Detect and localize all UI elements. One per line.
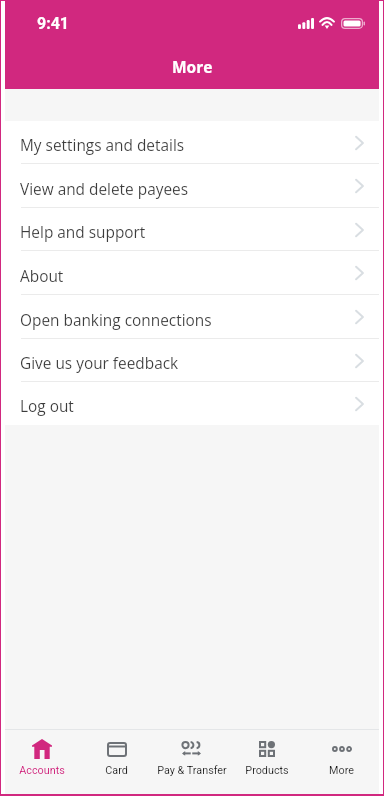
button[interactable]: Give us your feedback: [5, 339, 379, 382]
button[interactable]: More: [304, 730, 379, 794]
staticText: About: [20, 266, 64, 287]
staticText: My settings and details: [20, 135, 185, 156]
staticText: More: [329, 764, 354, 777]
staticText: Accounts: [19, 764, 65, 777]
button[interactable]: Products: [229, 730, 304, 794]
button[interactable]: My settings and details: [5, 121, 379, 164]
button[interactable]: Log out: [5, 382, 379, 425]
button[interactable]: Card: [79, 730, 154, 794]
staticText: Give us your feedback: [20, 353, 179, 374]
staticText: 9:41: [37, 14, 70, 33]
staticText: Open banking connections: [20, 310, 212, 331]
button[interactable]: View and delete payees: [5, 164, 379, 208]
button[interactable]: Pay & Transfer: [154, 730, 229, 794]
staticText: More: [172, 56, 213, 77]
button[interactable]: Help and support: [5, 208, 379, 251]
button[interactable]: Open banking connections: [5, 295, 379, 339]
button[interactable]: About: [5, 251, 379, 295]
staticText: Help and support: [20, 222, 146, 243]
staticText: Pay & Transfer: [157, 764, 227, 777]
staticText: Log out: [20, 396, 74, 417]
staticText: Products: [245, 764, 289, 777]
staticText: Card: [105, 764, 128, 777]
staticText: View and delete payees: [20, 179, 189, 200]
button[interactable]: Accounts: [5, 730, 79, 794]
